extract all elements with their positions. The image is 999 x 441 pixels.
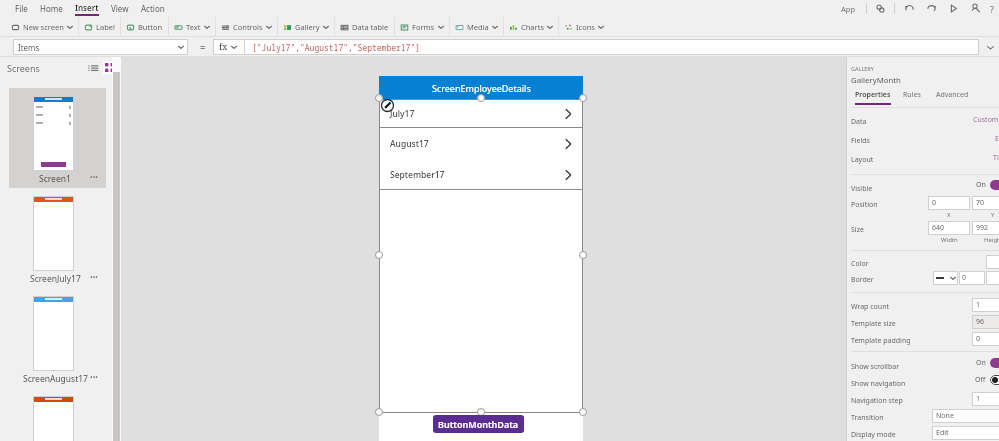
staticText: Advanced	[936, 90, 969, 100]
button[interactable]: More options	[90, 273, 98, 283]
button[interactable]: App	[838, 4, 859, 14]
staticText: Navigation step	[851, 396, 903, 406]
staticText: ?	[990, 3, 994, 15]
button[interactable]: Forms	[395, 17, 449, 37]
button[interactable]: 0	[962, 271, 985, 285]
button[interactable]: More options	[90, 173, 98, 183]
staticText: Template size	[851, 319, 896, 329]
staticText: =	[200, 41, 206, 54]
button[interactable]: Home	[34, 0, 69, 17]
button[interactable]: View	[105, 0, 135, 17]
staticText: Fields	[851, 136, 870, 146]
button[interactable]: Redo	[925, 2, 938, 15]
staticText: •••	[90, 373, 98, 383]
button[interactable]: 640	[928, 221, 970, 235]
button[interactable]: Icons	[559, 17, 609, 37]
staticText: Ti	[993, 153, 999, 163]
staticText: Button	[138, 22, 163, 32]
button[interactable]: Label	[79, 17, 120, 37]
staticText: On	[976, 358, 986, 368]
staticText: Off	[975, 375, 986, 385]
button[interactable]: ScreenEmployeeDetails	[379, 76, 583, 99]
staticText: 0	[962, 273, 967, 283]
button[interactable]: July17	[379, 99, 583, 128]
staticText: New screen	[23, 22, 64, 32]
staticText: Show scrollbar	[851, 362, 900, 372]
button[interactable]: Insert	[69, 0, 105, 17]
button[interactable]: Border color	[986, 271, 999, 285]
button[interactable]: Help	[990, 3, 994, 15]
button[interactable]: File	[9, 0, 34, 17]
button[interactable]: Controls	[216, 17, 277, 37]
staticText: Home	[40, 3, 63, 14]
button[interactable]: None	[932, 409, 999, 423]
staticText: GalleryMonth	[851, 75, 901, 86]
staticText: Border	[851, 275, 874, 285]
button[interactable]: More options	[90, 373, 98, 383]
button[interactable]: Color picker	[986, 255, 999, 269]
button[interactable]: 0	[928, 196, 970, 210]
button[interactable]: On	[976, 358, 999, 368]
button[interactable]: Action	[135, 0, 171, 17]
button[interactable]: Media	[450, 17, 503, 37]
button[interactable]: New screen	[6, 17, 78, 37]
staticText: ScreenJuly17	[30, 273, 81, 285]
staticText: 0	[932, 198, 937, 208]
button[interactable]: Text	[169, 17, 215, 37]
button[interactable]: Items	[13, 39, 188, 55]
button[interactable]: fx	[219, 41, 228, 53]
button[interactable]: 992	[972, 221, 999, 235]
staticText: Label	[96, 22, 115, 32]
button[interactable]: Share	[969, 2, 982, 15]
button[interactable]: List view	[87, 62, 99, 74]
button[interactable]: ButtonMonthData	[433, 415, 524, 433]
staticText: •••	[90, 273, 98, 283]
button[interactable]: Edit	[932, 426, 999, 440]
button[interactable]: Flow	[874, 2, 887, 15]
staticText: 70	[976, 198, 985, 208]
staticText: None	[936, 411, 954, 421]
staticText: July17	[390, 108, 415, 120]
button[interactable]: 1	[972, 392, 999, 406]
button[interactable]: Preview	[947, 2, 960, 15]
button[interactable]: August17	[379, 128, 583, 159]
staticText: August17	[390, 138, 429, 150]
button[interactable]: Button	[121, 17, 168, 37]
staticText: 640	[932, 223, 945, 233]
button[interactable]: 1	[972, 298, 999, 312]
staticText: E	[995, 134, 999, 144]
button[interactable]: Rules	[903, 90, 921, 105]
button[interactable]: Border style	[933, 271, 958, 285]
staticText: 1	[976, 300, 981, 310]
staticText: Width	[941, 236, 958, 244]
button[interactable]	[9, 88, 106, 188]
button[interactable]	[9, 388, 106, 441]
button[interactable]: Data table	[335, 17, 394, 37]
button[interactable]: Undo	[903, 2, 916, 15]
staticText: Height	[984, 236, 999, 244]
button[interactable]: Advanced	[936, 90, 969, 105]
button[interactable]: Off	[975, 375, 999, 385]
button[interactable]: 0	[972, 332, 999, 346]
button[interactable]	[9, 188, 106, 288]
button[interactable]: 96	[972, 315, 999, 329]
button[interactable]: Charts	[504, 17, 558, 37]
staticText: ["July17","August17","September17"]	[252, 42, 420, 53]
staticText: Forms	[412, 22, 435, 32]
button[interactable]: On	[976, 180, 999, 190]
staticText: Screen1	[39, 173, 71, 185]
staticText: Properties	[855, 90, 891, 100]
button[interactable]: Gallery	[278, 17, 334, 37]
staticText: Gallery	[295, 22, 320, 32]
staticText: Wrap count	[851, 302, 890, 312]
button[interactable]: 70	[972, 196, 999, 210]
button[interactable]: Edit	[380, 98, 395, 113]
button[interactable]	[9, 288, 106, 388]
staticText: ScreenEmployeeDetails	[432, 82, 531, 94]
button[interactable]: Tile view	[103, 61, 116, 74]
staticText: Action	[141, 3, 165, 14]
button[interactable]: September17	[379, 159, 583, 190]
staticText: Controls	[233, 22, 263, 32]
button[interactable]: Properties	[855, 90, 891, 105]
staticText: Size	[851, 225, 864, 235]
